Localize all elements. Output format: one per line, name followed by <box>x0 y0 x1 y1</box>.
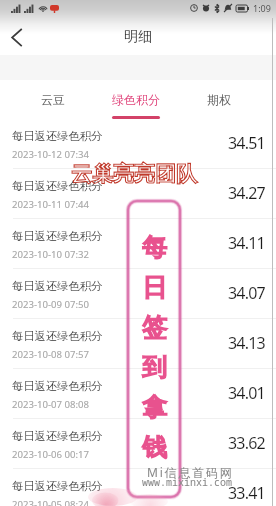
button[interactable]: 每日返还绿色积分 <box>0 219 276 269</box>
staticText: 期权 <box>207 92 231 107</box>
button[interactable]: 每日返还绿色积分 <box>0 469 276 506</box>
staticText: 2023-10-07 08:08 <box>12 398 90 411</box>
staticText: 到 <box>142 352 167 383</box>
staticText: 每日返还绿色积分 <box>12 279 103 293</box>
staticText: 1:09 <box>253 2 271 14</box>
staticText: 拿 <box>142 392 167 423</box>
staticText: 每日返还绿色积分 <box>12 479 103 493</box>
button[interactable]: 每日返还绿色积分 <box>0 319 276 369</box>
staticText: 每日返还绿色积分 <box>12 129 103 143</box>
staticText: 34.01 <box>228 382 265 404</box>
staticText: 34.27 <box>228 182 265 204</box>
staticText: 签 <box>142 312 167 343</box>
staticText: 34.13 <box>228 332 265 354</box>
staticText: 明细 <box>124 28 152 46</box>
staticText: 云巢亮亮团队 <box>71 161 197 187</box>
staticText: 每日返还绿色积分 <box>12 179 103 193</box>
button[interactable]: 每日返还绿色积分 <box>0 119 276 169</box>
staticText: 34.07 <box>228 282 265 304</box>
button[interactable]: 每 <box>126 199 182 499</box>
button[interactable]: 每日返还绿色积分 <box>0 419 276 469</box>
staticText: 2023-10-08 07:57 <box>12 348 90 361</box>
staticText: 33.62 <box>228 432 265 454</box>
staticText: 34.51 <box>228 132 265 154</box>
button[interactable]: 期权 <box>177 80 260 119</box>
button[interactable]: Back <box>1 22 31 52</box>
staticText: 每日返还绿色积分 <box>12 229 103 243</box>
staticText: 每日返还绿色积分 <box>12 429 103 443</box>
button[interactable]: 每日返还绿色积分 <box>0 369 276 419</box>
staticText: 2023-10-10 07:32 <box>12 248 90 261</box>
staticText: 33.41 <box>228 482 265 504</box>
button[interactable]: 每日返还绿色积分 <box>0 169 276 219</box>
staticText: 2023-10-12 07:34 <box>12 148 90 161</box>
staticText: 2023-10-11 07:44 <box>12 198 90 211</box>
staticText: 日 <box>142 272 167 303</box>
staticText: 绿色积分 <box>112 92 160 107</box>
staticText: 每日返还绿色积分 <box>12 329 103 343</box>
button[interactable]: 每日返还绿色积分 <box>0 269 276 319</box>
staticText: 每日返还绿色积分 <box>12 379 103 393</box>
staticText: www.mixinxi.com <box>142 475 232 489</box>
staticText: 每 <box>142 232 167 263</box>
staticText: 2023-10-06 00:17 <box>12 448 90 461</box>
staticText: 34.11 <box>228 232 265 254</box>
staticText: 2023-10-09 07:50 <box>12 298 90 311</box>
button[interactable]: 云豆 <box>11 80 94 119</box>
staticText: 2023-10-05 08:24 <box>12 498 90 506</box>
staticText: 钱 <box>142 432 167 463</box>
staticText: Mi信息首码网 <box>147 464 234 480</box>
button[interactable]: 绿色积分 <box>94 80 177 119</box>
staticText: 云豆 <box>41 92 65 107</box>
